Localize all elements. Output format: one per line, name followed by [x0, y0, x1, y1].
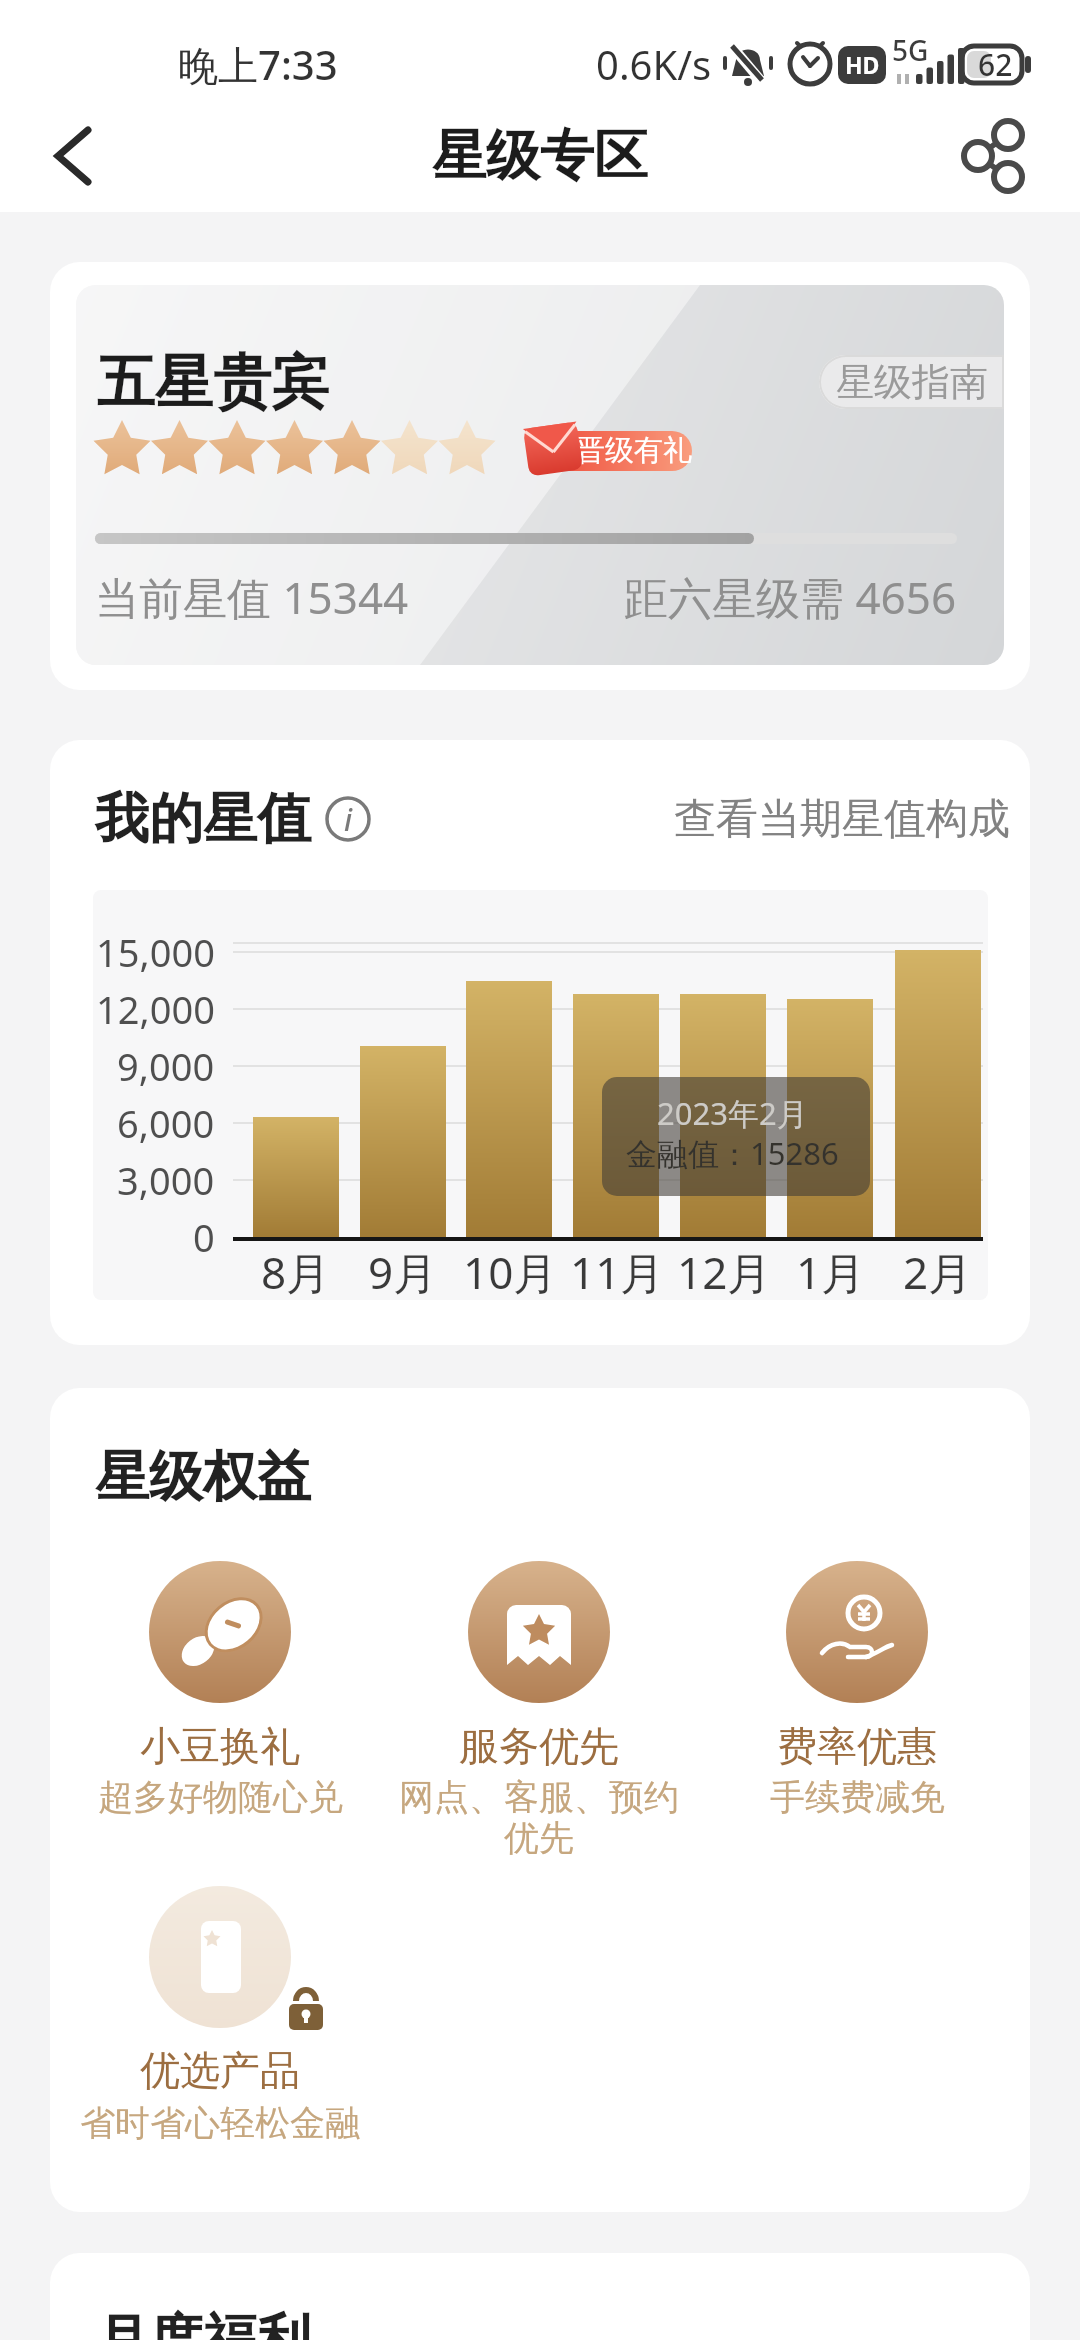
staticText: 62: [978, 44, 1013, 85]
staticText: 距六星级需 4656: [624, 567, 957, 627]
staticText: 手续费减免: [770, 1775, 945, 1819]
staticText: 星级专区: [432, 122, 648, 190]
staticText: 省时省心轻松金融: [80, 2101, 360, 2145]
button[interactable]: [149, 1886, 291, 2028]
button[interactable]: [786, 1561, 928, 1703]
staticText: 小豆换礼: [140, 1721, 300, 1771]
button[interactable]: 查看当期星值构成: [510, 777, 1010, 861]
staticText: 2月: [903, 1242, 973, 1300]
button[interactable]: [30, 116, 110, 196]
button[interactable]: [950, 116, 1050, 196]
staticText: 10月: [463, 1242, 558, 1300]
staticText: i: [344, 799, 353, 840]
staticText: 五星贵宾: [97, 346, 329, 419]
staticText: 12月: [677, 1242, 772, 1300]
staticText: 查看当期星值构成: [674, 793, 1010, 846]
staticText: 9,000: [117, 1040, 215, 1092]
staticText: 晋级有礼: [576, 432, 692, 469]
staticText: 我的星值: [95, 785, 311, 853]
staticText: 3,000: [117, 1154, 215, 1206]
staticText: 12,000: [96, 983, 215, 1035]
staticText: 1月: [796, 1242, 866, 1300]
staticText: 优先: [504, 1816, 574, 1860]
staticText: 金融值：15286: [626, 1132, 839, 1174]
staticText: 15,000: [96, 926, 215, 978]
staticText: 0: [193, 1211, 215, 1263]
staticText: 月度福利: [95, 2306, 311, 2340]
button[interactable]: [550, 431, 692, 471]
staticText: 服务优先: [459, 1721, 619, 1771]
staticText: 星级指南: [836, 358, 988, 406]
button[interactable]: [468, 1561, 610, 1703]
staticText: 星级权益: [95, 1443, 311, 1511]
staticText: 优选产品: [140, 2045, 300, 2095]
staticText: 8月: [261, 1242, 331, 1300]
staticText: HD: [845, 49, 880, 80]
staticText: 6,000: [117, 1097, 215, 1149]
staticText: 晚上7:33: [178, 37, 338, 92]
staticText: 当前星值 15344: [95, 567, 409, 627]
button[interactable]: 星级指南: [819, 355, 1004, 409]
staticText: 0.6K/s: [596, 37, 712, 91]
button[interactable]: 15,000: [93, 890, 988, 1300]
staticText: 5G: [892, 31, 929, 69]
button[interactable]: [149, 1561, 291, 1703]
staticText: 2023年2月: [657, 1092, 808, 1134]
staticText: 11月: [570, 1242, 665, 1300]
button[interactable]: 五星贵宾: [50, 262, 1030, 690]
staticText: 费率优惠: [777, 1721, 937, 1771]
staticText: 9月: [368, 1242, 438, 1300]
staticText: 超多好物随心兑: [98, 1775, 343, 1819]
staticText: 网点、客服、预约: [399, 1775, 679, 1819]
